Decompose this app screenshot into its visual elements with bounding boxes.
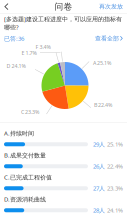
staticText: E 1.7% [21,49,36,57]
button[interactable]: 再次发放 [99,0,127,13]
staticText: B.成果交付数量 [4,151,46,159]
staticText: D.资源消耗曲线 [4,195,46,203]
staticText: C 23.3% [21,108,39,116]
staticText: 问卷 [54,1,72,12]
button[interactable]: 查看全部 [95,35,123,42]
staticText: 29人 [93,140,105,148]
staticText: 23.3% [107,184,123,192]
button[interactable]: 返回 [0,0,13,13]
staticText: 26人 [93,162,105,170]
staticText: [多选题]建设工程进度中，可以应用的指标有哪些? [4,15,122,31]
staticText: F 3.4% [35,43,50,51]
staticText: 再次发放 [99,3,123,10]
staticText: B 22.4% [94,101,112,109]
staticText: 已答:36 [4,34,24,42]
staticText: 28人 [93,206,105,214]
staticText: A.持续时间 [4,129,34,137]
staticText: 24.1% [107,206,123,214]
staticText: 27人 [93,184,105,192]
staticText: A 25.1% [93,59,111,67]
staticText: D 24.1% [6,62,25,70]
staticText: 25.1% [107,140,123,148]
staticText: 查看全部 [95,35,119,42]
staticText: C.已完成工程价值 [4,173,52,181]
staticText: 22.4% [107,162,123,170]
